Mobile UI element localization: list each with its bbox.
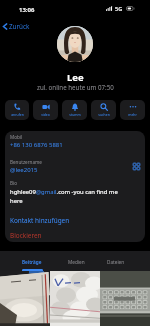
staticText: zul. online heute um 07:50 (37, 83, 114, 91)
button[interactable] (50, 271, 100, 326)
button[interactable]: mehr (120, 100, 145, 120)
button[interactable]: Dateien (96, 251, 136, 271)
staticText: Lee (67, 71, 84, 84)
staticText: Mobil (10, 134, 23, 140)
staticText: mehr (128, 112, 137, 117)
staticText: hghlee09@gmail.com -you can find me here (10, 188, 121, 205)
button[interactable]: stumm (62, 100, 87, 120)
staticText: Dateien (107, 259, 125, 265)
staticText: suchen (98, 112, 110, 117)
button[interactable]: anrufen (5, 100, 29, 120)
button[interactable]: Medien (56, 251, 96, 271)
button[interactable]: video (33, 100, 58, 120)
staticText: 5G (115, 5, 123, 12)
button[interactable] (0, 271, 50, 326)
staticText: anrufen (11, 112, 24, 117)
staticText: Zurück (9, 22, 30, 31)
staticText: Bio (10, 180, 17, 186)
staticText: 13:06 (19, 6, 35, 14)
staticText: Medien (68, 259, 85, 265)
button[interactable]: suchen (91, 100, 116, 120)
staticText: @lee2015 (10, 166, 38, 174)
staticText: Blockieren (10, 231, 42, 240)
button[interactable]: Bio (5, 179, 145, 212)
staticText: +86 130 6876 5881 (10, 141, 63, 149)
button[interactable]: Zurück (0, 20, 34, 33)
button[interactable]: Kontakt hinzufügen (5, 212, 145, 228)
button[interactable]: Mobil (5, 131, 145, 156)
button[interactable]: Blockieren (5, 228, 145, 242)
staticText: Beiträge (22, 259, 42, 265)
button[interactable] (100, 271, 150, 326)
staticText: video (41, 112, 50, 117)
button[interactable]: Benutzername (5, 156, 145, 179)
staticText: Benutzername (10, 159, 42, 165)
staticText: Kontakt hinzufügen (10, 216, 70, 225)
button[interactable]: Beiträge (12, 251, 52, 271)
staticText: stumm (69, 112, 81, 117)
other: QR-Code (133, 163, 140, 170)
